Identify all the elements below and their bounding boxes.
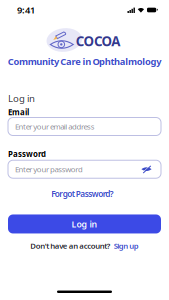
staticText: Community Care in Ophthalmology (8, 55, 161, 68)
staticText: Email (8, 107, 29, 117)
staticText: Password (8, 148, 46, 159)
button[interactable]: Enter your password (8, 160, 161, 178)
staticText: Sign up (114, 240, 139, 251)
button[interactable]: Enter your email address (8, 117, 161, 135)
button[interactable]: Log in (8, 214, 161, 233)
staticText: Don't have an account? (30, 240, 111, 251)
button[interactable]: Sign up (114, 240, 139, 251)
staticText: COCOA (76, 32, 120, 50)
staticText: Enter your password (15, 164, 83, 174)
staticText: Log in (71, 218, 97, 230)
staticText: Forgot Password? (51, 188, 114, 199)
staticText: Enter your email address (15, 121, 95, 132)
staticText: Log in (8, 92, 35, 105)
staticText: 9:41 (17, 4, 35, 16)
button[interactable]: Forgot Password? (53, 188, 116, 199)
